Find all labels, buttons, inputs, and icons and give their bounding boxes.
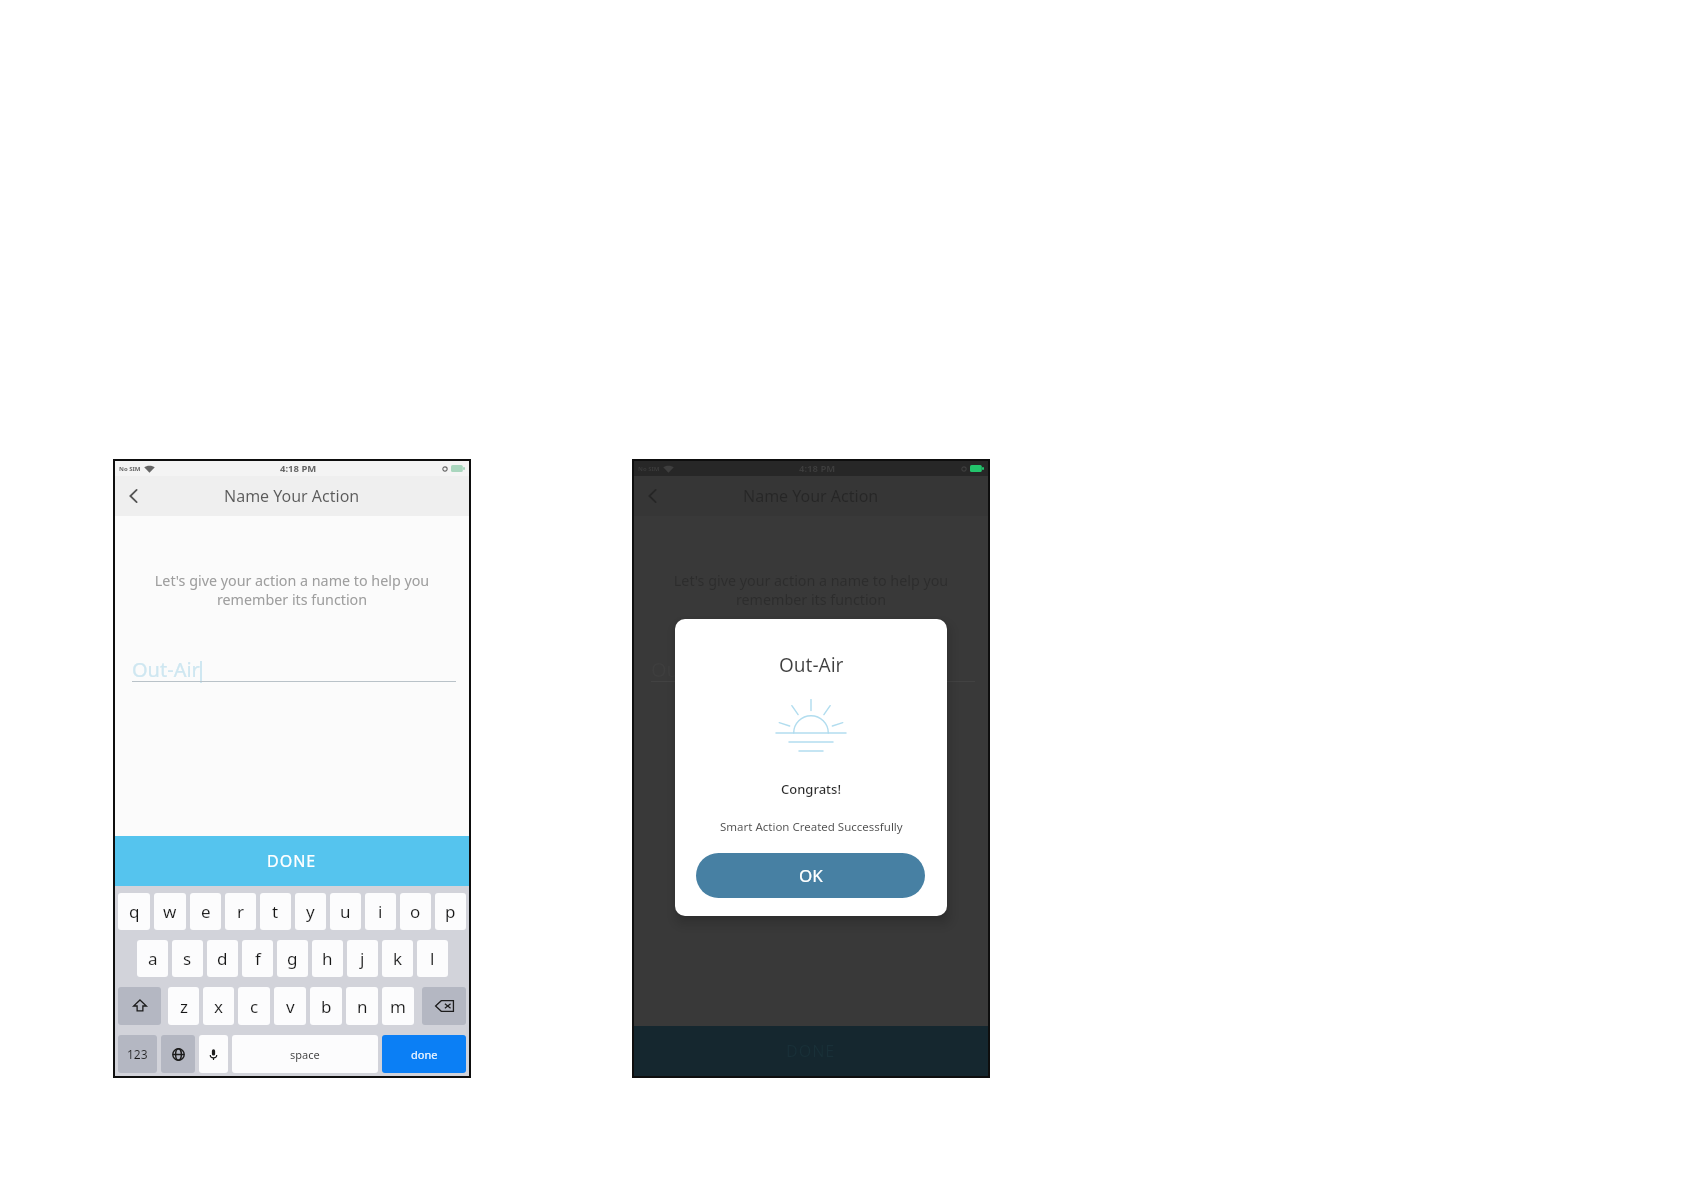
staticText: i: [378, 900, 383, 923]
button[interactable]: c: [238, 987, 270, 1025]
staticText: m: [390, 995, 406, 1018]
staticText: done: [411, 1047, 438, 1062]
staticText: 4:18 PM: [280, 462, 317, 475]
button[interactable]: n: [346, 987, 378, 1025]
staticText: g: [287, 947, 298, 970]
button[interactable]: w: [154, 893, 186, 930]
staticText: w: [163, 900, 177, 923]
button[interactable]: OK: [696, 853, 925, 898]
button[interactable]: y: [295, 893, 326, 930]
staticText: No SIM: [119, 465, 141, 473]
button[interactable]: a: [137, 940, 168, 977]
staticText: x: [214, 995, 223, 1018]
button[interactable]: q: [118, 893, 150, 930]
staticText: v: [286, 995, 295, 1018]
button[interactable]: Back: [121, 484, 145, 508]
button[interactable]: v: [274, 987, 306, 1025]
button[interactable]: s: [172, 940, 203, 977]
staticText: k: [393, 947, 403, 970]
staticText: OK: [799, 864, 823, 887]
button[interactable]: space: [232, 1035, 378, 1073]
staticText: Out-Air: [779, 652, 844, 678]
staticText: p: [445, 900, 456, 923]
staticText: c: [250, 995, 259, 1018]
button[interactable]: m: [382, 987, 414, 1025]
staticText: a: [148, 947, 158, 970]
staticText: o: [410, 900, 421, 923]
staticText: f: [255, 947, 261, 970]
button[interactable]: x: [203, 987, 234, 1025]
staticText: e: [201, 900, 211, 923]
button[interactable]: [199, 1035, 228, 1073]
button[interactable]: p: [435, 893, 466, 930]
staticText: Out-Air: [651, 656, 719, 683]
button[interactable]: Back: [640, 484, 664, 508]
staticText: y: [306, 900, 315, 923]
staticText: space: [290, 1047, 320, 1062]
button[interactable]: r: [225, 893, 256, 930]
staticText: Name Your Action: [743, 485, 879, 507]
button[interactable]: k: [382, 940, 413, 977]
button[interactable]: e: [190, 893, 221, 930]
staticText: Smart Action Created Successfully: [720, 819, 903, 835]
staticText: r: [237, 900, 245, 923]
button[interactable]: l: [417, 940, 448, 977]
staticText: t: [272, 900, 279, 923]
staticText: n: [357, 995, 368, 1018]
staticText: DONE: [267, 850, 317, 872]
button[interactable]: j: [347, 940, 378, 977]
button[interactable]: i: [365, 893, 396, 930]
staticText: z: [180, 995, 188, 1018]
staticText: h: [322, 947, 333, 970]
button[interactable]: b: [310, 987, 342, 1025]
staticText: s: [183, 947, 192, 970]
button[interactable]: Backspace: [422, 987, 466, 1025]
button[interactable]: h: [312, 940, 343, 977]
button[interactable]: z: [168, 987, 199, 1025]
staticText: 123: [127, 1046, 148, 1062]
staticText: Out-Air: [132, 656, 200, 683]
staticText: No SIM: [638, 465, 660, 473]
staticText: u: [340, 900, 351, 923]
staticText: Let's give your action a name to help yo…: [123, 571, 461, 609]
staticText: b: [321, 995, 332, 1018]
button[interactable]: g: [277, 940, 308, 977]
staticText: 4:18 PM: [799, 462, 836, 475]
button[interactable]: d: [207, 940, 238, 977]
staticText: d: [217, 947, 228, 970]
button[interactable]: DONE: [115, 836, 469, 886]
button[interactable]: Numbers: [118, 1035, 157, 1073]
staticText: j: [360, 947, 365, 970]
button[interactable]: done: [382, 1035, 466, 1073]
staticText: l: [430, 947, 435, 970]
button[interactable]: Shift: [118, 987, 161, 1025]
button[interactable]: o: [400, 893, 431, 930]
button[interactable]: u: [330, 893, 361, 930]
staticText: q: [129, 900, 140, 923]
staticText: Congrats!: [781, 780, 841, 798]
button[interactable]: t: [260, 893, 291, 930]
button[interactable]: Language: [161, 1035, 195, 1073]
button[interactable]: f: [242, 940, 273, 977]
staticText: Name Your Action: [224, 485, 360, 507]
